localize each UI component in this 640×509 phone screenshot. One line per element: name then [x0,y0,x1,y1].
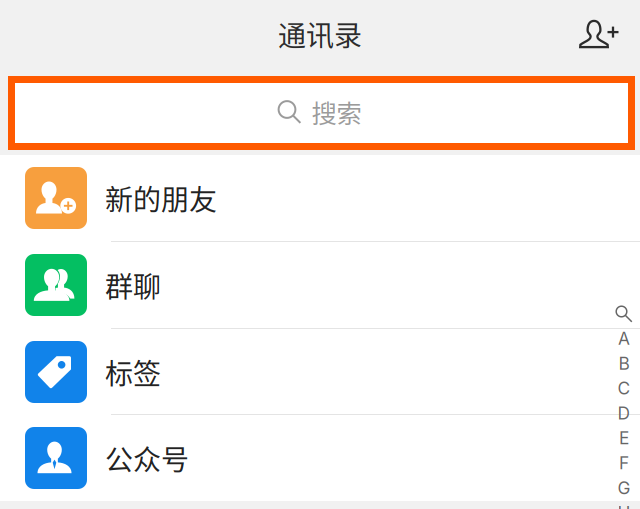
button[interactable]: 群聊 [0,242,640,328]
button[interactable]: 公众号 [0,415,640,501]
staticText: 群聊 [105,265,161,305]
staticText: C [617,378,630,399]
staticText: G [617,477,630,498]
button[interactable]: 新的朋友 [0,155,640,241]
button[interactable]: Section index [611,302,637,509]
staticText: 通讯录 [278,14,362,54]
staticText: 标签 [105,352,161,392]
staticText: 公众号 [105,438,189,478]
staticText: 新的朋友 [105,178,217,218]
staticText: 搜索 [311,94,361,130]
button[interactable]: 搜索 [8,76,635,150]
staticText: F [619,452,629,473]
staticText: A [618,328,630,349]
staticText: D [617,403,630,424]
button[interactable]: Add contact [566,5,634,63]
button[interactable]: 标签 [0,329,640,415]
staticText: B [618,353,629,374]
staticText: H [617,502,630,509]
staticText: E [619,428,629,449]
